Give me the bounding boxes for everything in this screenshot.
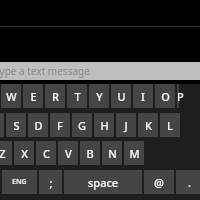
button[interactable]: R xyxy=(45,84,65,108)
staticText: S xyxy=(13,118,20,133)
button[interactable]: N xyxy=(102,141,122,165)
staticText: O xyxy=(161,89,170,104)
staticText: F xyxy=(57,118,63,133)
staticText: E xyxy=(30,89,37,104)
staticText: ENG xyxy=(12,177,27,187)
button[interactable]: F xyxy=(50,113,70,137)
button[interactable]: type a text message xyxy=(0,62,200,80)
button[interactable]: U xyxy=(111,84,131,108)
button[interactable]: Z xyxy=(0,141,12,165)
button[interactable]: G xyxy=(72,113,92,137)
button[interactable]: Y xyxy=(89,84,109,108)
staticText: space xyxy=(88,175,119,190)
staticText: Y xyxy=(96,89,103,104)
button[interactable]: X xyxy=(14,141,34,165)
button[interactable]: T xyxy=(67,84,87,108)
staticText: T xyxy=(74,89,81,104)
staticText: I xyxy=(141,89,145,104)
staticText: X xyxy=(21,146,28,161)
staticText: V xyxy=(65,146,72,161)
button[interactable]: L xyxy=(160,113,180,137)
button[interactable]: C xyxy=(36,141,56,165)
staticText: U xyxy=(117,89,126,104)
staticText: P xyxy=(177,89,179,104)
staticText: L xyxy=(167,118,173,133)
staticText: @ xyxy=(154,175,164,190)
button[interactable]: W xyxy=(1,84,21,108)
staticText: W xyxy=(6,89,17,104)
staticText: K xyxy=(145,118,152,133)
staticText: Z xyxy=(0,146,6,161)
button[interactable]: V xyxy=(58,141,78,165)
button[interactable]: H xyxy=(94,113,114,137)
button[interactable]: K xyxy=(138,113,158,137)
button[interactable]: space xyxy=(64,170,142,194)
button[interactable]: D xyxy=(28,113,48,137)
staticText: . xyxy=(188,175,191,190)
staticText: G xyxy=(78,118,86,133)
button[interactable]: M xyxy=(124,141,144,165)
button[interactable]: . xyxy=(176,170,200,194)
staticText: D xyxy=(34,118,43,133)
staticText: M xyxy=(129,146,140,161)
button[interactable]: O xyxy=(155,84,175,108)
staticText: ; xyxy=(49,175,53,190)
button[interactable]: E xyxy=(23,84,43,108)
button[interactable]: S xyxy=(6,113,26,137)
staticText: R xyxy=(52,89,59,104)
button[interactable]: Change language xyxy=(2,170,37,194)
button[interactable]: ; xyxy=(39,170,62,194)
staticText: B xyxy=(86,146,94,161)
staticText: H xyxy=(100,118,109,133)
staticText: N xyxy=(108,146,117,161)
staticText: J xyxy=(124,118,128,133)
staticText: type a text message xyxy=(0,64,90,78)
staticText: C xyxy=(43,146,50,161)
button[interactable]: I xyxy=(133,84,153,108)
button[interactable]: J xyxy=(116,113,136,137)
button[interactable]: @ xyxy=(144,170,174,194)
button[interactable]: P xyxy=(177,84,179,108)
button[interactable]: B xyxy=(80,141,100,165)
